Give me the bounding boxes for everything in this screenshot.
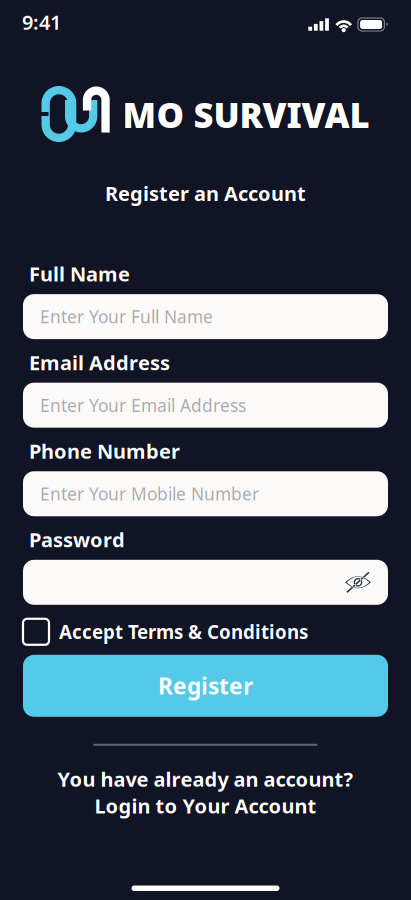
button[interactable]: You have already an account? xyxy=(57,766,353,819)
staticText: Accept Terms & Conditions xyxy=(59,619,308,644)
staticText: Enter Your Mobile Number xyxy=(40,482,259,505)
staticText: Register xyxy=(158,671,253,701)
staticText: Register an Account xyxy=(105,180,306,207)
staticText: 9:41 xyxy=(22,9,61,35)
staticText: Phone Number xyxy=(29,438,180,464)
staticText: Password xyxy=(29,526,125,553)
staticText: Enter Your Email Address xyxy=(40,394,246,417)
staticText: MO SURVIVAL xyxy=(122,91,369,137)
staticText: You have already an account? xyxy=(57,766,353,792)
staticText: Email Address xyxy=(29,349,170,376)
staticText: Full Name xyxy=(29,261,130,287)
button[interactable]: Register xyxy=(23,655,388,717)
button[interactable]: Accept Terms & Conditions xyxy=(23,619,388,645)
staticText: Enter Your Full Name xyxy=(40,305,213,328)
staticText: Login to Your Account xyxy=(94,792,316,819)
